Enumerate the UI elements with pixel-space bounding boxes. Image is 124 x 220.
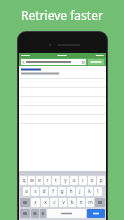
button[interactable]: Emoji (31, 209, 39, 218)
button[interactable]: c (50, 198, 58, 207)
button[interactable]: Dictation (40, 209, 46, 218)
button[interactable]: y (61, 176, 69, 185)
button[interactable]: x (41, 198, 49, 207)
button[interactable]: v (59, 198, 67, 207)
button[interactable]: Go (87, 209, 105, 218)
button[interactable] (82, 61, 85, 64)
button[interactable] (19, 68, 106, 75)
staticText: h (69, 188, 73, 195)
button[interactable]: k (85, 187, 93, 196)
staticText: d (42, 188, 46, 195)
staticText: a (25, 188, 28, 195)
staticText: x (44, 199, 47, 206)
button[interactable]: o (88, 176, 96, 185)
button[interactable]: n (77, 198, 85, 207)
staticText: y (64, 177, 67, 184)
button[interactable]: g (58, 187, 66, 196)
button[interactable]: Search (88, 59, 104, 65)
button[interactable]: b (68, 198, 76, 207)
staticText: i (82, 177, 84, 184)
button[interactable]: d (40, 187, 48, 196)
button[interactable]: i (79, 176, 87, 185)
staticText: e (38, 177, 41, 184)
button[interactable]: space (47, 209, 86, 218)
staticText: Retrieve faster (0, 7, 124, 23)
button[interactable]: t (52, 176, 60, 185)
staticText: p (99, 177, 103, 184)
button[interactable]: e (36, 176, 43, 185)
staticText: k (88, 188, 91, 195)
staticText: z (34, 199, 37, 206)
staticText: t (55, 177, 57, 184)
button[interactable]: p (97, 176, 105, 185)
staticText: f (52, 188, 54, 195)
staticText: b (70, 199, 74, 206)
button[interactable]: u (70, 176, 78, 185)
button[interactable]: a (23, 187, 30, 196)
button[interactable]: Backspace (95, 198, 105, 207)
button[interactable]: w (28, 176, 35, 185)
button[interactable]: Shift (20, 198, 30, 207)
button[interactable] (21, 59, 86, 65)
staticText: s (34, 188, 37, 195)
staticText: q (22, 177, 26, 184)
button[interactable]: Numbers (20, 209, 30, 218)
staticText: u (72, 177, 76, 184)
staticText: m (88, 199, 93, 206)
button[interactable]: r (44, 176, 51, 185)
button[interactable]: m (86, 198, 94, 207)
button[interactable]: j (76, 187, 84, 196)
staticText: l (97, 188, 99, 195)
staticText: n (79, 199, 83, 206)
staticText: c (53, 199, 56, 206)
staticText: w (30, 177, 34, 184)
staticText: j (79, 188, 81, 195)
button[interactable]: f (49, 187, 57, 196)
button[interactable]: h (67, 187, 75, 196)
staticText: o (90, 177, 94, 184)
button[interactable]: q (20, 176, 27, 185)
staticText: g (60, 188, 64, 195)
staticText: r (46, 177, 49, 184)
button[interactable]: l (94, 187, 102, 196)
button[interactable]: z (31, 198, 40, 207)
staticText: v (62, 199, 65, 206)
button[interactable]: s (31, 187, 39, 196)
